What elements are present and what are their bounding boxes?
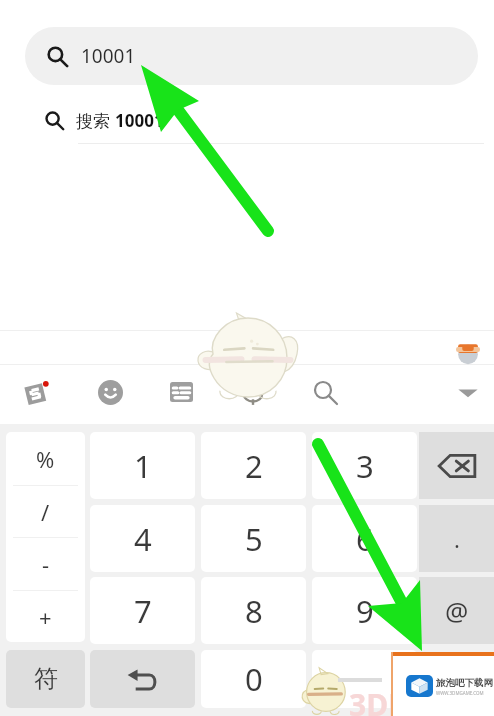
staticText: % xyxy=(36,444,55,474)
button[interactable]: . xyxy=(419,505,494,572)
other: Sogou input method xyxy=(21,375,55,409)
button[interactable]: Emoji xyxy=(83,367,137,417)
staticText: 6 xyxy=(356,518,374,560)
staticText: 2 xyxy=(245,445,263,487)
staticText: WWW.3DMGAME.COM xyxy=(436,690,484,696)
staticText: 5 xyxy=(245,518,263,560)
other: Voice input xyxy=(240,378,266,406)
other: Return xyxy=(127,667,158,692)
other: Search xyxy=(47,46,68,67)
button[interactable]: / xyxy=(6,485,85,538)
staticText: 7 xyxy=(134,590,152,632)
other: Search xyxy=(45,111,64,130)
staticText: 0 xyxy=(245,658,263,700)
other: Keyboard layout xyxy=(170,382,193,402)
button[interactable]: Search xyxy=(298,367,352,417)
staticText: 3 xyxy=(356,445,374,487)
button[interactable]: Search xyxy=(0,96,494,144)
other: Hide keyboard xyxy=(456,380,480,404)
button[interactable]: Search xyxy=(25,27,478,85)
other: Sticker xyxy=(455,340,481,363)
button[interactable]: 4 xyxy=(90,505,195,572)
other: Search xyxy=(313,380,338,405)
staticText: . xyxy=(454,524,460,554)
button[interactable]: Delete xyxy=(419,432,494,499)
other: Emoji xyxy=(98,380,123,405)
button[interactable]: 8 xyxy=(201,577,306,644)
button[interactable]: 1 xyxy=(90,432,195,499)
button[interactable]: @ xyxy=(419,577,494,644)
button[interactable]: + xyxy=(6,590,85,643)
staticText: 符 xyxy=(34,664,58,694)
button[interactable]: 7 xyxy=(90,577,195,644)
button[interactable]: 6 xyxy=(312,505,417,572)
button[interactable]: 符 xyxy=(6,650,85,708)
staticText: + xyxy=(39,602,52,632)
staticText: 旅泡吧下载网 xyxy=(436,677,493,689)
staticText: 4 xyxy=(134,518,152,560)
staticText: @ xyxy=(445,593,469,628)
other: Delete xyxy=(438,447,476,485)
staticText: - xyxy=(42,549,50,579)
button[interactable]: Hide keyboard xyxy=(441,367,494,417)
button[interactable]: 2 xyxy=(201,432,306,499)
staticText: 1 xyxy=(134,445,152,487)
staticText: 9 xyxy=(356,590,374,632)
button[interactable]: 9 xyxy=(312,577,417,644)
button[interactable] xyxy=(312,650,417,708)
staticText: 3DM xyxy=(349,684,417,716)
button[interactable]: % xyxy=(6,432,85,485)
button[interactable]: 0 xyxy=(201,650,306,708)
button[interactable]: Keyboard layout xyxy=(154,367,208,417)
button[interactable]: 3 xyxy=(312,432,417,499)
staticText: 10001 xyxy=(115,109,164,132)
button[interactable]: Voice input xyxy=(226,367,280,417)
staticText: 10001 xyxy=(81,43,136,69)
staticText: / xyxy=(41,497,50,527)
button[interactable]: 5 xyxy=(201,505,306,572)
staticText: 搜索 xyxy=(76,109,115,132)
button[interactable]: Sogou input method xyxy=(11,367,65,417)
button[interactable]: - xyxy=(6,537,85,590)
staticText: 8 xyxy=(245,590,263,632)
button[interactable]: Return xyxy=(90,650,195,708)
